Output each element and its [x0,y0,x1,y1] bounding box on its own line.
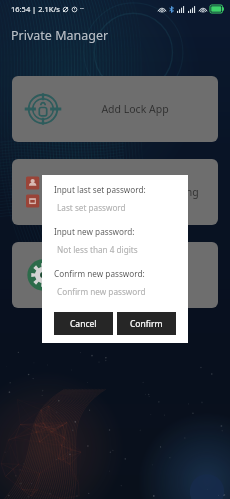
staticText: Add Lock App [101,102,169,116]
button[interactable]: Confirm [117,312,176,335]
other: Hide image and video [26,175,60,209]
other: Unlock setting [26,258,60,292]
staticText: Input last set password: [54,184,146,195]
staticText: 16:54 | 2.1K/s [11,4,60,14]
staticText: Confirm new password: [54,268,145,279]
staticText: Not less than 4 digits [57,244,138,255]
staticText: ·· [80,4,84,14]
button[interactable]: Not less than 4 digits [54,244,176,255]
staticText: Confirm new password [57,286,146,297]
other: Add lock app [26,92,60,126]
button[interactable]: Add lock app [12,76,218,142]
staticText: Last set password [57,202,126,213]
button[interactable]: Cancel [54,312,113,335]
staticText: Confirm [130,318,163,330]
staticText: Input new password: [54,226,135,237]
staticText: Cancel [70,318,97,330]
staticText: Hide Image/Video Setting [72,185,199,199]
button[interactable]: Confirm new password [54,286,176,297]
button[interactable]: Last set password [54,202,176,213]
staticText: Unlock Setting [99,268,171,282]
button[interactable]: Unlock setting [12,242,218,308]
staticText: Private Manager [11,27,109,44]
button[interactable]: Hide image and video [12,159,218,225]
